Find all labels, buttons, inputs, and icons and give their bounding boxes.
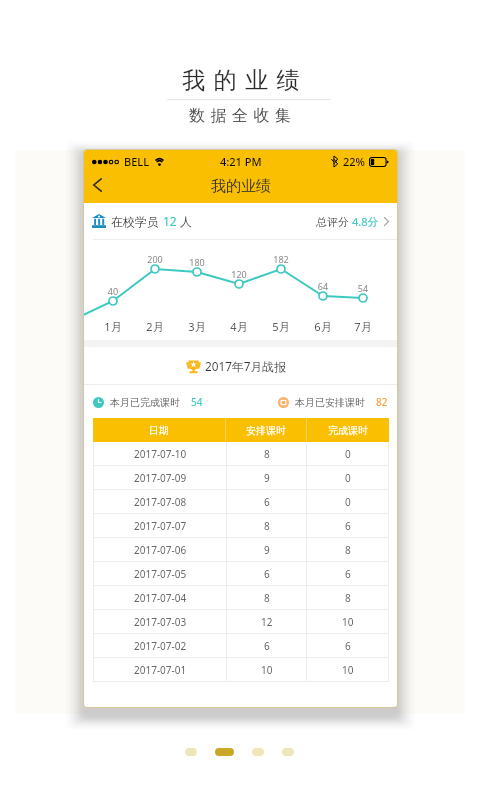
- staticText: 6: [345, 639, 351, 653]
- staticText: 总评分: [316, 214, 352, 229]
- button[interactable]: 2017-07-10: [93, 442, 389, 465]
- staticText: 2017-07-08: [134, 495, 187, 509]
- button[interactable]: Page indicator: [252, 748, 264, 756]
- staticText: 2017-07-03: [134, 615, 187, 629]
- staticText: 10: [342, 615, 354, 629]
- staticText: 8: [345, 591, 351, 605]
- staticText: 9: [264, 471, 270, 485]
- staticText: 1月: [98, 319, 128, 334]
- staticText: 7月: [348, 319, 378, 334]
- button[interactable]: 在校学员: [84, 203, 397, 239]
- button[interactable]: 2017-07-05: [93, 562, 389, 585]
- staticText: 10: [342, 663, 354, 677]
- staticText: 人: [177, 213, 193, 229]
- staticText: BELL: [124, 154, 150, 169]
- button[interactable]: 2017-07-06: [93, 538, 389, 561]
- staticText: 3月: [182, 319, 212, 334]
- staticText: 6: [264, 567, 270, 581]
- staticText: 我的业绩: [211, 177, 271, 196]
- staticText: 安排课时: [246, 424, 286, 437]
- staticText: 6月: [308, 319, 338, 334]
- button[interactable]: 2017-07-03: [93, 610, 389, 633]
- button[interactable]: Back: [84, 172, 110, 203]
- staticText: 180: [185, 256, 209, 268]
- staticText: 本月已完成课时: [110, 396, 180, 409]
- staticText: 182: [269, 253, 293, 265]
- staticText: 40: [101, 285, 125, 297]
- staticText: 5月: [266, 319, 296, 334]
- staticText: 4月: [224, 319, 254, 334]
- button[interactable]: 2017-07-09: [93, 466, 389, 489]
- staticText: 数据全收集: [189, 106, 297, 126]
- staticText: 10: [261, 663, 273, 677]
- staticText: 8: [264, 591, 270, 605]
- staticText: 8: [345, 543, 351, 557]
- button[interactable]: 2017-07-04: [93, 586, 389, 609]
- button[interactable]: Page indicator: [215, 748, 234, 756]
- button[interactable]: Page indicator: [185, 748, 197, 756]
- staticText: 6: [264, 639, 270, 653]
- staticText: 4.8分: [352, 214, 379, 229]
- staticText: 8: [264, 519, 270, 533]
- button[interactable]: 2017-07-02: [93, 634, 389, 657]
- staticText: 8: [264, 447, 270, 461]
- staticText: 2017-07-09: [134, 471, 187, 485]
- staticText: 2017-07-07: [134, 519, 187, 533]
- staticText: 22%: [343, 154, 365, 169]
- button[interactable]: 2017-07-07: [93, 514, 389, 537]
- button[interactable]: Page indicator: [282, 748, 294, 756]
- staticText: 6: [345, 567, 351, 581]
- staticText: 0: [345, 495, 351, 509]
- staticText: 54: [351, 282, 375, 294]
- staticText: 200: [143, 253, 167, 265]
- staticText: 2017-07-02: [134, 639, 187, 653]
- staticText: 120: [227, 268, 251, 280]
- staticText: 82: [376, 395, 388, 409]
- staticText: 本月已安排课时: [295, 396, 365, 409]
- staticText: 6: [345, 519, 351, 533]
- button[interactable]: 2017-07-08: [93, 490, 389, 513]
- staticText: 64: [311, 280, 335, 292]
- staticText: 6: [264, 495, 270, 509]
- staticText: 我的业绩: [178, 66, 304, 95]
- button[interactable]: 2017-07-01: [93, 658, 389, 681]
- staticText: 0: [345, 447, 351, 461]
- staticText: 9: [264, 543, 270, 557]
- staticText: 4:21 PM: [220, 154, 262, 169]
- staticText: 日期: [149, 424, 169, 437]
- staticText: 在校学员: [111, 213, 163, 229]
- staticText: 2017年7月战报: [205, 358, 286, 374]
- staticText: 2017-07-05: [134, 567, 187, 581]
- staticText: 12: [163, 213, 177, 229]
- staticText: 12: [261, 615, 273, 629]
- staticText: 完成课时: [328, 424, 368, 437]
- staticText: 2017-07-01: [134, 663, 187, 677]
- staticText: 2017-07-04: [134, 591, 187, 605]
- staticText: 2月: [140, 319, 170, 334]
- staticText: 54: [191, 395, 203, 409]
- staticText: 2017-07-06: [134, 543, 187, 557]
- staticText: 0: [345, 471, 351, 485]
- staticText: 2017-07-10: [134, 447, 187, 461]
